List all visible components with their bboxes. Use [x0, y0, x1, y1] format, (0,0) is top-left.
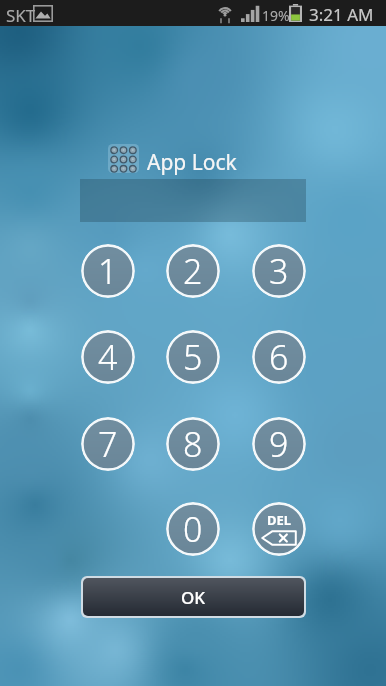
staticText: 6 — [269, 334, 289, 380]
button[interactable]: 3 — [252, 244, 306, 298]
button[interactable]: 1 — [81, 244, 135, 298]
staticText: 1 — [98, 248, 118, 294]
staticText: 7 — [98, 421, 118, 467]
staticText: OK — [181, 586, 206, 609]
staticText: 8 — [183, 421, 203, 467]
staticText: 3:21 AM — [309, 3, 374, 26]
staticText: DEL — [267, 511, 292, 529]
staticText: 2 — [183, 248, 203, 294]
staticText: 0 — [183, 506, 203, 552]
staticText: 9 — [269, 421, 289, 467]
button[interactable]: 7 — [81, 417, 135, 471]
button[interactable]: OK — [83, 578, 304, 616]
button[interactable]: 8 — [166, 417, 220, 471]
button[interactable]: 4 — [81, 330, 135, 384]
button[interactable]: 5 — [166, 330, 220, 384]
staticText: 5 — [183, 334, 203, 380]
button[interactable]: 0 — [166, 502, 220, 556]
button[interactable]: 2 — [166, 244, 220, 298]
staticText: 4 — [98, 334, 118, 380]
staticText: SKT — [6, 4, 36, 27]
staticText: 19% — [262, 6, 290, 25]
staticText: 3 — [269, 248, 289, 294]
button[interactable]: 6 — [252, 330, 306, 384]
staticText: App Lock — [147, 148, 237, 177]
button[interactable]: Delete — [252, 502, 306, 556]
button[interactable]: 9 — [252, 417, 306, 471]
